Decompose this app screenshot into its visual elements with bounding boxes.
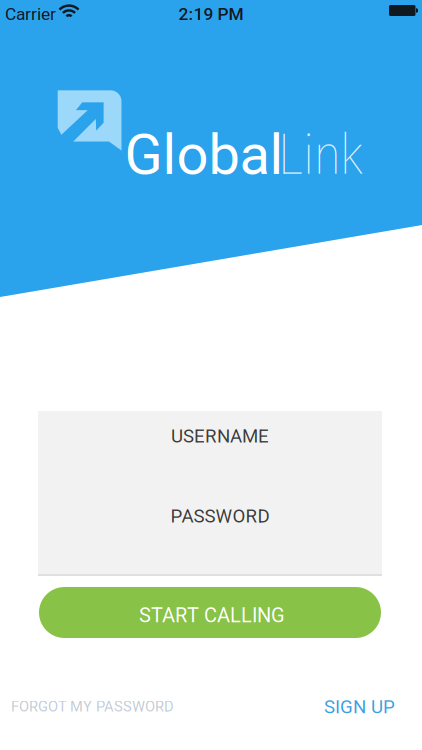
button[interactable]: FORGOT MY PASSWORD xyxy=(11,698,174,715)
staticText: FORGOT MY PASSWORD xyxy=(11,698,174,715)
staticText: Link xyxy=(278,123,363,187)
staticText: USERNAME xyxy=(171,425,269,447)
button[interactable]: SIGN UP xyxy=(324,696,395,718)
staticText: START CALLING xyxy=(139,604,285,627)
button[interactable]: PASSWORD xyxy=(38,491,382,541)
button[interactable]: START CALLING xyxy=(39,587,381,638)
staticText: SIGN UP xyxy=(324,696,395,718)
button[interactable]: USERNAME xyxy=(38,411,382,461)
staticText: Carrier xyxy=(5,4,56,24)
staticText: Global xyxy=(124,122,283,188)
staticText: 2:19 PM xyxy=(178,4,243,24)
staticText: PASSWORD xyxy=(170,505,269,527)
